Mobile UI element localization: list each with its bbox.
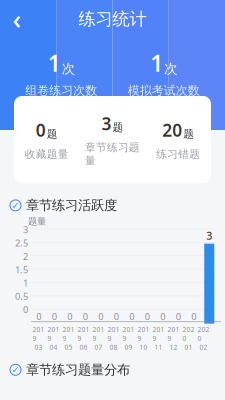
staticText: 模拟考试次数	[128, 83, 200, 98]
staticText: 次	[62, 61, 75, 77]
staticText: 2019	[152, 325, 164, 343]
staticText: 02	[199, 343, 207, 352]
staticText: 0	[98, 310, 103, 323]
staticText: 01	[184, 343, 192, 352]
staticText: 0	[129, 310, 134, 323]
staticText: 0	[114, 310, 119, 323]
staticText: 03	[34, 343, 42, 352]
staticText: 练习统计	[78, 8, 146, 30]
staticText: 20	[162, 119, 182, 142]
staticText: 0	[191, 310, 196, 323]
staticText: 2020	[197, 325, 209, 343]
staticText: 3	[23, 223, 28, 236]
staticText: 05	[64, 343, 72, 352]
staticText: 2019	[107, 325, 119, 343]
staticText: 章节练习活跃度	[26, 197, 117, 214]
staticText: 11	[154, 343, 162, 352]
staticText: 题	[47, 127, 58, 141]
staticText: 1	[48, 48, 61, 78]
staticText: 04	[49, 343, 57, 352]
staticText: 0	[145, 310, 150, 323]
staticText: 08	[109, 343, 117, 352]
staticText: 题	[112, 121, 123, 134]
staticText: 0	[23, 303, 28, 316]
staticText: 题量	[28, 216, 46, 227]
button[interactable]: 返回	[0, 6, 34, 32]
staticText: 0	[52, 310, 57, 323]
staticText: 2019	[62, 325, 74, 343]
staticText: 10	[139, 343, 147, 352]
staticText: 2.5	[15, 237, 28, 249]
staticText: 章节练习题量	[85, 141, 140, 167]
staticText: 0.5	[15, 290, 28, 302]
staticText: 0	[160, 310, 165, 323]
staticText: 练习错题	[156, 148, 200, 161]
staticText: 3	[206, 228, 212, 243]
staticText: 组卷练习次数	[25, 83, 97, 98]
staticText: 2	[23, 250, 28, 262]
staticText: 2019	[77, 325, 89, 343]
staticText: 0	[36, 310, 41, 323]
staticText: 2019	[92, 325, 104, 343]
staticText: 次	[164, 61, 177, 77]
staticText: 0	[67, 310, 72, 323]
staticText: 题	[183, 127, 194, 141]
staticText: 0	[176, 310, 181, 323]
staticText: 收藏题量	[25, 148, 69, 161]
staticText: 2019	[167, 325, 179, 343]
staticText: 章节练习题量分布	[26, 362, 130, 378]
staticText: 1	[150, 48, 163, 78]
staticText: ‹	[12, 1, 21, 37]
staticText: 09	[124, 343, 132, 352]
staticText: 2019	[137, 325, 149, 343]
staticText: ✓	[11, 364, 19, 375]
staticText: 2019	[32, 325, 44, 343]
staticText: 1	[23, 277, 28, 289]
staticText: ✓	[11, 200, 19, 211]
staticText: 12	[169, 343, 177, 352]
staticText: 2020	[182, 325, 194, 343]
staticText: 2019	[47, 325, 59, 343]
staticText: 3	[101, 112, 111, 135]
staticText: 2019	[122, 325, 134, 343]
staticText: 1.5	[15, 263, 28, 276]
staticText: 0	[36, 119, 46, 142]
staticText: 0	[83, 310, 88, 323]
staticText: 07	[94, 343, 102, 352]
staticText: 06	[79, 343, 87, 352]
